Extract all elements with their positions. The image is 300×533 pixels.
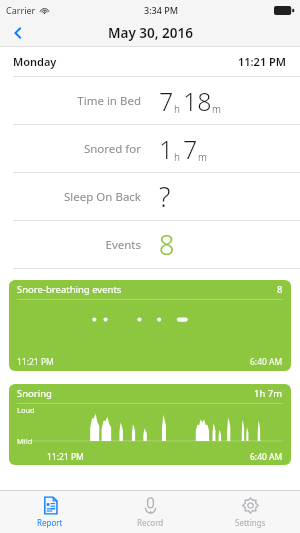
staticText: 11:21 PM bbox=[47, 451, 84, 463]
staticText: Record bbox=[137, 517, 164, 528]
staticText: Snore-breathing events bbox=[17, 283, 122, 296]
staticText: h bbox=[174, 150, 180, 164]
staticText: 8 bbox=[277, 283, 283, 296]
button[interactable]: Snored for bbox=[0, 125, 300, 172]
staticText: 6:40 AM bbox=[250, 451, 283, 463]
staticText: Mild bbox=[17, 436, 33, 446]
button[interactable]: Record bbox=[100, 491, 200, 533]
staticText: 11:21 PM bbox=[17, 356, 54, 368]
staticText: Time in Bed bbox=[77, 93, 141, 109]
staticText: ? bbox=[159, 178, 171, 215]
staticText: Events bbox=[105, 237, 141, 253]
staticText: m bbox=[198, 150, 207, 164]
button[interactable]: Report bbox=[0, 491, 100, 533]
button[interactable]: Time in Bed bbox=[0, 77, 300, 124]
staticText: May 30, 2016 bbox=[108, 24, 193, 42]
staticText: 8 bbox=[159, 226, 175, 263]
button[interactable]: Settings bbox=[200, 491, 300, 533]
staticText: 1h 7m bbox=[254, 387, 283, 400]
staticText: 11:21 PM bbox=[238, 54, 287, 69]
staticText: Loud bbox=[17, 405, 35, 415]
staticText: Report bbox=[37, 517, 63, 528]
staticText: 3:34 PM bbox=[144, 4, 178, 16]
staticText: Monday bbox=[13, 54, 57, 69]
staticText: 7 bbox=[159, 84, 174, 118]
staticText: Sleep On Back bbox=[64, 189, 141, 205]
staticText: Snored for bbox=[83, 141, 141, 157]
staticText: 18 bbox=[183, 84, 212, 118]
button[interactable]: Snoring bbox=[9, 384, 291, 465]
staticText: Settings bbox=[235, 517, 266, 528]
staticText: 6:40 AM bbox=[250, 356, 283, 368]
staticText: Carrier bbox=[6, 4, 36, 16]
button[interactable]: Back bbox=[2, 20, 34, 46]
staticText: m bbox=[212, 102, 221, 116]
button[interactable]: Sleep On Back bbox=[0, 173, 300, 220]
staticText: h bbox=[174, 102, 180, 116]
staticText: Snoring bbox=[17, 387, 52, 400]
staticText: 1 bbox=[159, 132, 174, 166]
button[interactable]: Snore-breathing events bbox=[9, 280, 291, 371]
button[interactable]: Events bbox=[0, 221, 300, 268]
staticText: 7 bbox=[183, 132, 198, 166]
